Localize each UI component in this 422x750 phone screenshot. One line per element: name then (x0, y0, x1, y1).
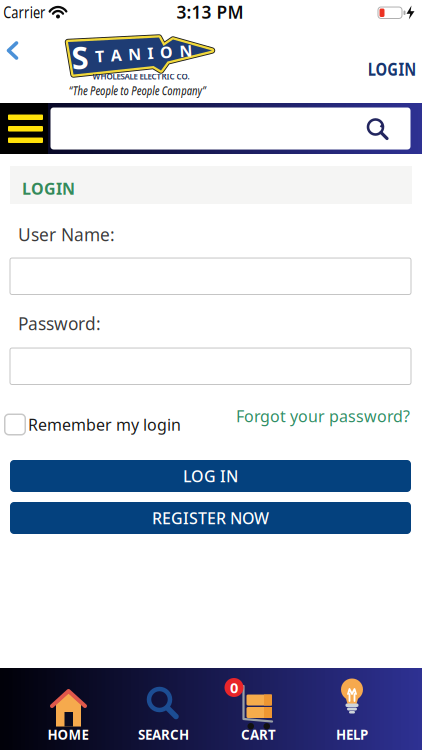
button[interactable]: Menu (0, 103, 48, 154)
button[interactable]: Back (4, 38, 28, 63)
staticText: Remember my login (28, 414, 181, 435)
button[interactable]: Cart (211, 668, 306, 750)
staticText: WHOLESALE ELECTRIC CO. (92, 71, 189, 82)
button[interactable]: Remember my login (4, 413, 181, 435)
staticText: I (147, 43, 153, 65)
button[interactable]: REGISTER NOW (10, 502, 411, 534)
button[interactable]: Search (116, 668, 211, 750)
button[interactable]: LOGIN (363, 57, 420, 80)
button[interactable]: Search (50, 107, 410, 149)
staticText: O (160, 43, 173, 65)
staticText: N (128, 43, 141, 65)
button[interactable]: User Name (9, 257, 411, 295)
staticText: N (179, 43, 192, 65)
staticText: Forgot your password? (236, 405, 410, 427)
staticText: CART (241, 726, 276, 743)
staticText: LOGIN (22, 178, 75, 199)
button[interactable]: Password (9, 347, 411, 385)
staticText: REGISTER NOW (152, 507, 269, 529)
button[interactable]: LOG IN (10, 460, 411, 492)
staticText: 0 (230, 678, 238, 697)
staticText: “The People to People Company” (49, 82, 225, 98)
staticText: HELP (336, 726, 368, 743)
staticText: LOGIN (363, 57, 420, 80)
button[interactable]: Help (305, 668, 400, 750)
staticText: T (95, 43, 104, 65)
staticText: A (110, 43, 121, 65)
staticText: Carrier (0, 1, 51, 23)
staticText: HOME (47, 726, 88, 743)
staticText: S (71, 34, 88, 74)
button[interactable]: Home (20, 668, 115, 750)
staticText: 3:13 PM (176, 0, 243, 23)
button[interactable]: Forgot your password? (236, 405, 410, 427)
staticText: LOG IN (183, 465, 238, 487)
staticText: Password: (18, 312, 101, 335)
staticText: User Name: (18, 223, 115, 246)
staticText: SEARCH (138, 726, 189, 743)
